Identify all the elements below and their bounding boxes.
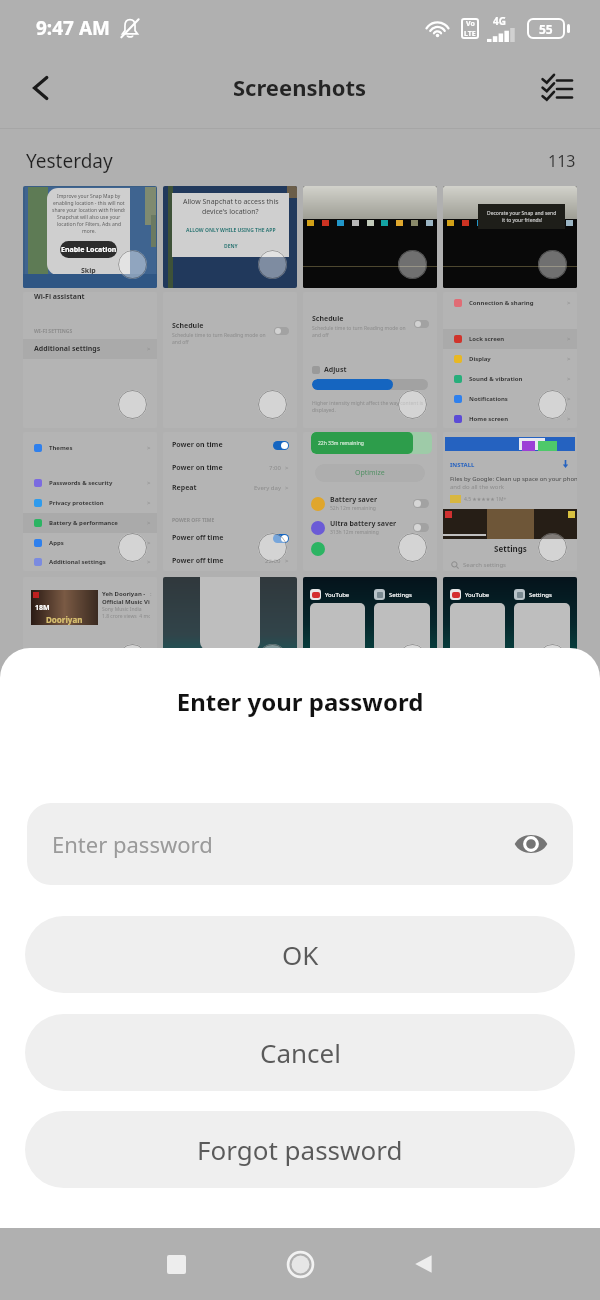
button[interactable]: YouTube [443, 577, 577, 682]
staticText: ALLOW ONLY WHILE USING THE APP [186, 227, 276, 234]
button[interactable]: 18M [23, 577, 157, 682]
staticText: Schedule [312, 314, 344, 324]
button[interactable]: Show password [511, 824, 551, 864]
button[interactable]: YouTube [303, 577, 437, 682]
staticText: 4.5 ★★★★★ 1M+ [464, 496, 507, 503]
staticText: Every day [254, 484, 281, 492]
staticText: 52h 12m remaining [330, 505, 376, 512]
staticText: Files by Google: Clean up space on your … [450, 475, 577, 483]
button[interactable]: 22h 33m remaining [303, 432, 437, 571]
staticText: it to your friends! [502, 217, 543, 224]
staticText: 1.8 crore views 4 mon... [102, 613, 150, 620]
staticText: more. [82, 228, 96, 235]
staticText: Sony Music India [102, 606, 142, 613]
staticText: 22h 33m remaining [318, 440, 364, 447]
staticText: > [147, 539, 151, 547]
staticText: Forgot password [197, 1132, 403, 1167]
button[interactable]: INSTALL [443, 432, 577, 571]
button[interactable]: Schedule [163, 292, 297, 428]
staticText: displayed. [312, 407, 336, 414]
staticText: 113 [548, 150, 576, 172]
button[interactable]: Schedule [303, 292, 437, 428]
staticText: 55 [539, 21, 553, 37]
staticText: INSTALL [450, 461, 475, 469]
staticText: and do all the work [450, 483, 505, 491]
staticText: Decorate your Snap and send [487, 210, 557, 217]
staticText: device's location? [202, 207, 259, 217]
staticText: > [147, 519, 151, 527]
staticText: Repeat [172, 483, 197, 493]
staticText: Themes [49, 444, 73, 452]
staticText: location for Filters, Ads and [57, 221, 121, 228]
staticText: Enter password [52, 829, 213, 859]
staticText: Adjust [324, 365, 347, 375]
button[interactable]: Select [536, 68, 584, 116]
button[interactable]: Recents [154, 1242, 198, 1286]
button[interactable]: Home [278, 1242, 322, 1286]
staticText: Schedule [172, 321, 204, 331]
button[interactable]: Wi-Fi assistant [23, 292, 157, 428]
staticText: > [147, 558, 151, 566]
staticText: Wi-Fi assistant [34, 292, 85, 302]
staticText: enabling location - this will not [53, 200, 125, 207]
button[interactable] [163, 577, 297, 682]
button[interactable] [303, 186, 437, 288]
staticText: Sound & vibration [469, 375, 523, 383]
staticText: Settings [494, 543, 527, 554]
staticText: > [567, 415, 571, 423]
staticText: Passwords & security [49, 479, 113, 487]
staticText: > [147, 345, 151, 353]
staticText: Snapchat will also use your [57, 214, 121, 221]
staticText: Enter your password [0, 685, 600, 718]
staticText: LTE [464, 29, 476, 39]
staticText: and off [312, 332, 329, 339]
staticText: > [567, 375, 571, 383]
staticText: > [147, 444, 151, 452]
button[interactable]: Cancel [25, 1014, 575, 1091]
button[interactable]: Enter password [27, 803, 573, 885]
staticText: Dooriyan [46, 614, 83, 625]
button[interactable]: Back [16, 68, 64, 116]
staticText: Notifications [469, 395, 508, 403]
staticText: 22:00 [265, 557, 281, 565]
staticText: Apps [49, 539, 64, 547]
staticText: > [285, 557, 289, 565]
staticText: Power on time [172, 463, 223, 473]
staticText: Additional settings [34, 344, 101, 354]
button[interactable]: Allow Snapchat to access this [163, 186, 297, 288]
staticText: Official Music Vid... [102, 598, 150, 606]
staticText: > [147, 499, 151, 507]
staticText: Power off time [172, 556, 224, 566]
staticText: POWER OFF TIME [172, 517, 215, 524]
staticText: 9:47 AM [36, 15, 110, 41]
staticText: > [567, 299, 571, 307]
button[interactable]: Power on time [163, 432, 297, 571]
staticText: Home screen [469, 415, 509, 423]
staticText: Higher intensity might affect the way co… [312, 400, 424, 407]
staticText: Schedule time to turn Reading mode on [312, 325, 406, 332]
staticText: DENY [224, 243, 238, 250]
staticText: Power off time [172, 533, 224, 543]
staticText: Enable Location [61, 245, 117, 255]
staticText: Yesterday [26, 148, 113, 174]
button[interactable]: Decorate your Snap and send [443, 186, 577, 288]
staticText: Ultra battery saver [330, 519, 397, 529]
button[interactable]: Themes [23, 432, 157, 571]
staticText: YouTube [465, 591, 490, 599]
staticText: Additional settings [49, 558, 106, 566]
staticText: Lock screen [469, 335, 505, 343]
staticText: Battery & performance [49, 519, 118, 527]
button[interactable]: Improve your Snap Map by [23, 186, 157, 288]
staticText: share your location with friends. [52, 207, 125, 214]
staticText: Display [469, 355, 491, 363]
button[interactable]: Back [402, 1242, 446, 1286]
button[interactable]: Connection & sharing [443, 292, 577, 428]
button[interactable]: OK [25, 916, 575, 993]
staticText: > [567, 395, 571, 403]
staticText: 7:00 [269, 464, 281, 472]
button[interactable]: Forgot password [25, 1111, 575, 1188]
staticText: WI-FI SETTINGS [34, 328, 73, 335]
